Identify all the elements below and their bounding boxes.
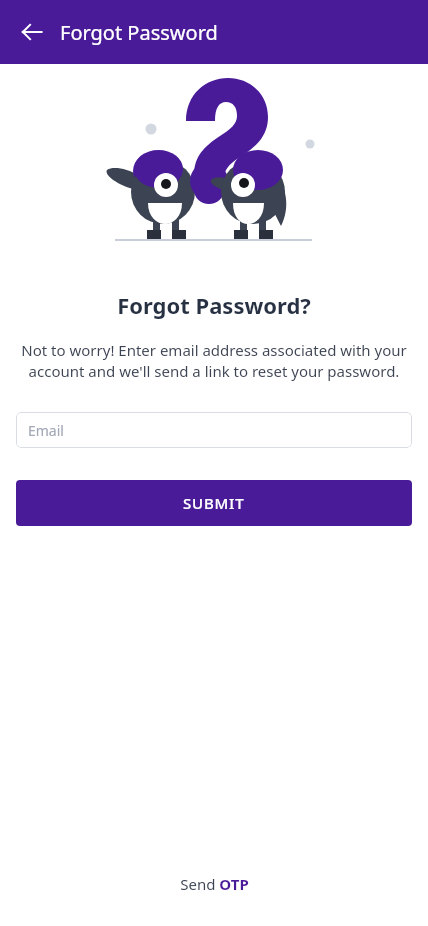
staticText: Email [28,421,64,440]
staticText: Not to worry! Enter email address associ… [14,340,414,382]
staticText: Forgot Password? [0,290,428,320]
button[interactable]: SUBMIT [16,480,412,526]
staticText: Send OTP [180,874,249,894]
button[interactable]: Back [8,8,56,56]
staticText: Forgot Password [60,19,218,46]
staticText: SUBMIT [183,493,245,513]
button[interactable]: Send OTP [0,874,428,894]
button[interactable]: Email [16,412,412,448]
